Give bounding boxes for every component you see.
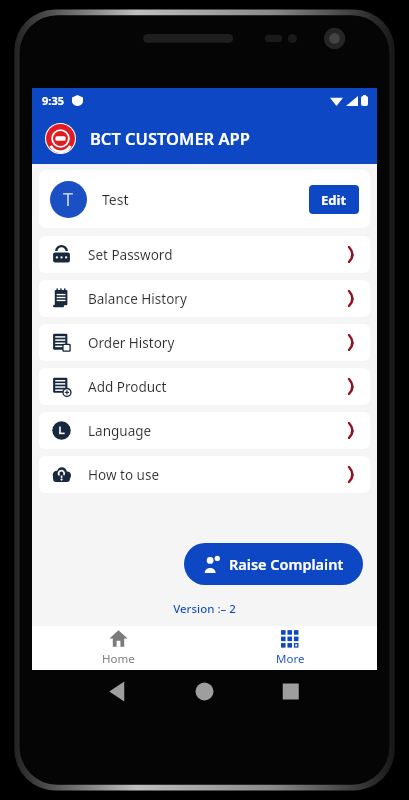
button[interactable]: Order History <box>39 324 370 361</box>
staticText: Raise Complaint <box>229 554 344 574</box>
button[interactable]: Edit <box>309 185 359 214</box>
staticText: Order History <box>88 334 175 352</box>
button[interactable]: Add Product <box>39 368 370 405</box>
staticText: Set Password <box>88 246 173 264</box>
staticText: BCT CUSTOMER APP <box>90 127 250 149</box>
button[interactable]: Home <box>32 626 204 670</box>
button[interactable]: More <box>204 626 377 670</box>
staticText: T <box>63 187 74 212</box>
staticText: Balance History <box>88 290 187 308</box>
button[interactable]: Raise Complaint <box>184 543 363 585</box>
button[interactable]: T <box>39 170 370 228</box>
button[interactable]: How to use <box>39 456 370 493</box>
staticText: Language <box>88 422 152 440</box>
staticText: Version :– 2 <box>32 601 377 617</box>
staticText: More <box>276 651 305 667</box>
button[interactable]: Balance History <box>39 280 370 317</box>
staticText: Home <box>102 651 135 667</box>
staticText: Add Product <box>88 378 167 396</box>
button[interactable]: Set Password <box>39 236 370 273</box>
staticText: Test <box>102 190 129 209</box>
staticText: How to use <box>88 466 159 484</box>
button[interactable]: Language <box>39 412 370 449</box>
staticText: 9:35 <box>42 93 64 108</box>
staticText: Edit <box>321 191 347 209</box>
